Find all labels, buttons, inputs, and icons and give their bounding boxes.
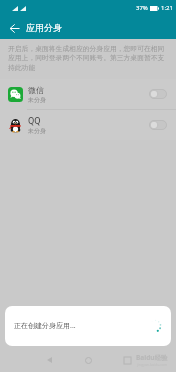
staticText: Baidu经验 [136,353,168,362]
staticText: 正在创建分身应用... [14,321,76,331]
staticText: 37% [136,4,148,12]
staticText: 1:21 [161,4,173,12]
button[interactable]: QQ [0,110,176,140]
button[interactable]: 返回 [3,17,25,39]
button[interactable]: 微信 [0,79,176,109]
staticText: 未分身 [28,127,46,135]
staticText: 微信 [28,85,44,95]
staticText: 未分身 [28,96,46,104]
button[interactable]: 最近任务 [114,348,140,372]
button[interactable]: 应用分身开关 [149,89,167,99]
button[interactable]: 应用分身开关 [149,120,167,130]
staticText: 开启后，桌面将生成相应的分身应用，您即可在相同应用上，同时登录两个不同账号。第三… [8,44,168,72]
staticText: 应用分身 [26,22,62,33]
staticText: QQ [28,115,41,126]
